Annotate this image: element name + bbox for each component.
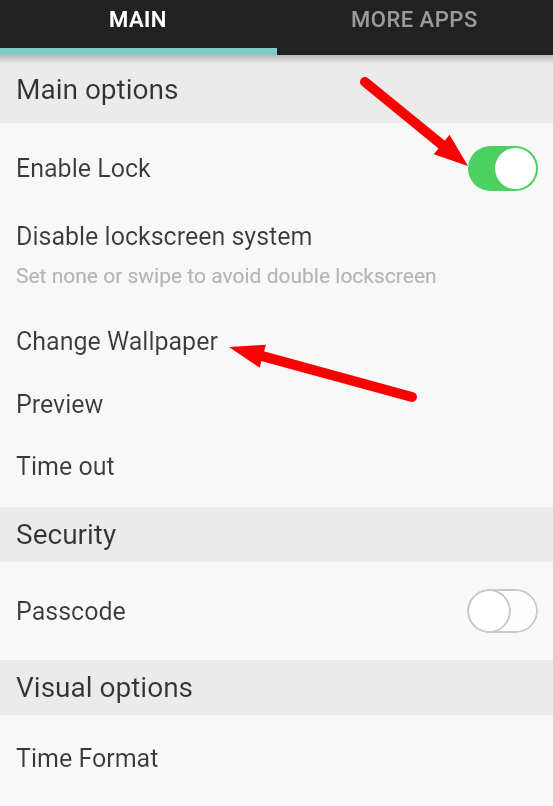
staticText: Visual options [16, 671, 194, 704]
staticText: Security [16, 518, 117, 551]
staticText: Passcode [16, 597, 126, 626]
staticText: Set none or swipe to avoid double locksc… [16, 264, 437, 289]
staticText: Disable lockscreen system [16, 222, 313, 251]
button[interactable]: Time Format [0, 715, 553, 801]
staticText: Enable Lock [16, 154, 151, 183]
staticText: MORE APPS [351, 7, 478, 33]
staticText: MAIN [109, 7, 167, 33]
staticText: Change Wallpaper [16, 327, 218, 356]
button[interactable]: MORE APPS [276, 0, 553, 39]
staticText: Preview [16, 390, 104, 419]
button[interactable]: MAIN [0, 0, 276, 39]
staticText: Main options [16, 73, 179, 106]
button[interactable]: Enable Lock [0, 123, 553, 213]
button[interactable] [468, 146, 538, 191]
button[interactable]: Disable lockscreen system [0, 213, 553, 310]
staticText: Time Format [16, 744, 159, 773]
staticText: Time out [16, 452, 115, 481]
button[interactable]: Change Wallpaper [0, 310, 553, 373]
button[interactable]: Preview [0, 373, 553, 436]
button[interactable]: Passcode [0, 562, 553, 660]
button[interactable]: Time out [0, 436, 553, 496]
button[interactable] [467, 589, 538, 633]
